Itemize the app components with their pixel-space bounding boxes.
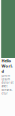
staticText: Lorem ipsum dolor sit amet consectetur — [1, 74, 13, 95]
staticText: Hello World — [1, 58, 12, 74]
